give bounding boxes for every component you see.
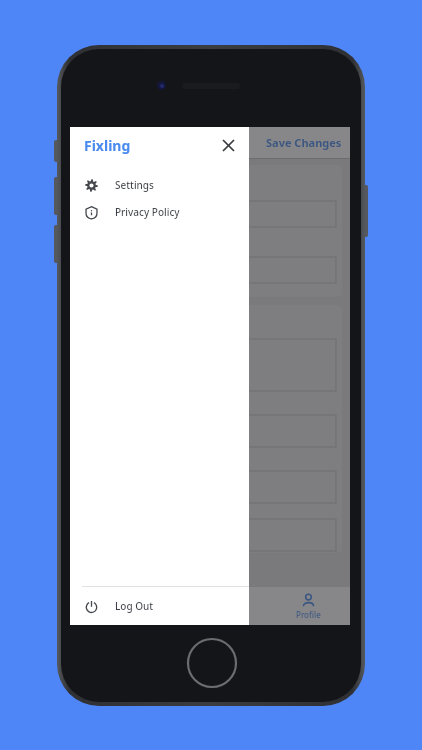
button[interactable]: Save Changes (258, 131, 350, 154)
button[interactable]: Close menu (215, 132, 241, 158)
staticText: Log Out (115, 599, 154, 613)
staticText: Profile (296, 609, 321, 620)
staticText: Fixling (84, 136, 131, 155)
staticText: Settings (115, 178, 154, 192)
button[interactable]: Settings (70, 171, 249, 198)
staticText: Save Changes (266, 135, 342, 150)
button[interactable]: Privacy Policy (70, 198, 249, 225)
button[interactable]: Profile (266, 589, 350, 624)
staticText: Privacy Policy (115, 205, 180, 219)
button[interactable]: Log Out (70, 587, 249, 625)
